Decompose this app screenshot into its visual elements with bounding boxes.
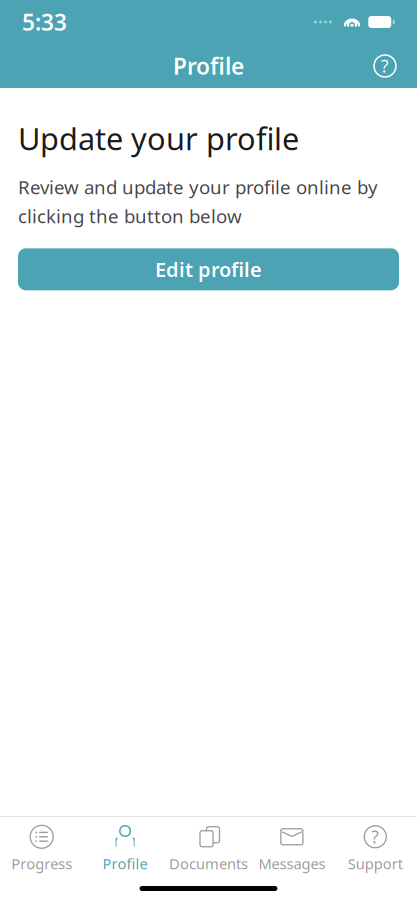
button[interactable]: Progress [0, 824, 83, 872]
button[interactable]: Profile [83, 824, 167, 872]
button[interactable]: Help [363, 44, 407, 88]
staticText: Update your profile [18, 118, 299, 159]
staticText: Progress [11, 854, 72, 873]
button[interactable]: Edit profile [18, 248, 399, 290]
staticText: Messages [258, 854, 325, 873]
staticText: Profile [173, 51, 244, 81]
staticText: Support [348, 854, 403, 873]
button[interactable]: ? [334, 824, 417, 872]
button[interactable]: Messages [250, 824, 334, 872]
staticText: Review and update your profile online by… [18, 175, 378, 228]
staticText: Profile [103, 854, 148, 873]
staticText: ? [381, 54, 389, 77]
staticText: Edit profile [155, 256, 262, 283]
staticText: ? [371, 825, 379, 848]
staticText: Documents [169, 854, 248, 873]
staticText: 5:33 [22, 7, 67, 37]
button[interactable]: Documents [167, 824, 250, 872]
